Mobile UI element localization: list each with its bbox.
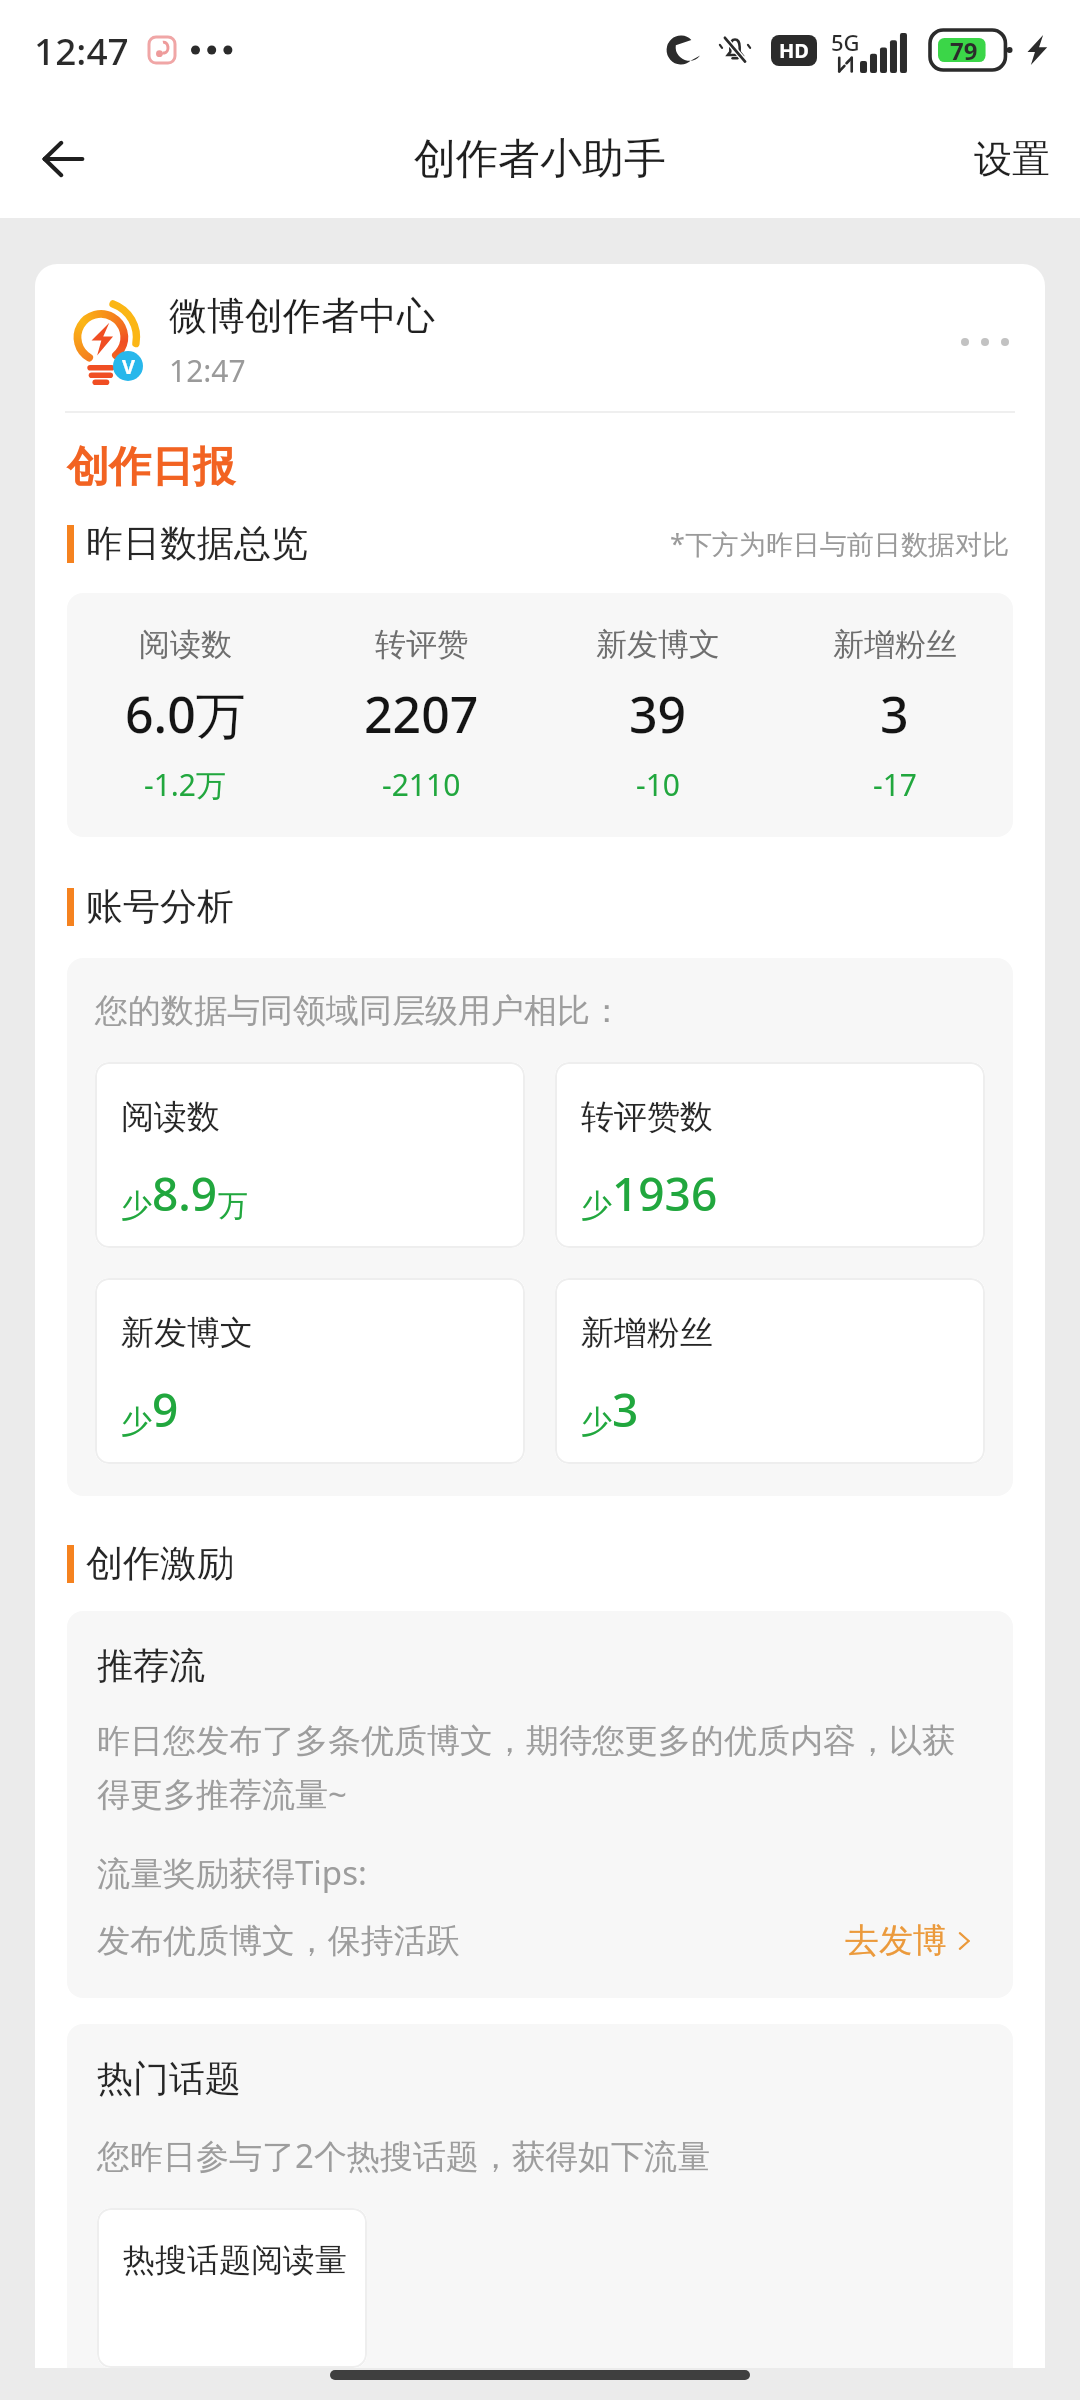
staticText: 6.0万 (125, 680, 246, 748)
staticText: 昨日您发布了多条优质博文，期待您更多的优质内容，以获得更多推荐流量~ (97, 1720, 983, 1816)
staticText: -17 (873, 764, 917, 805)
staticText: 微博创作者中心 (169, 292, 435, 340)
staticText: *下方为昨日与前日数据对比 (670, 525, 1009, 562)
staticText: 创作者小助手 (414, 133, 666, 186)
staticText: 推荐流 (97, 1643, 205, 1688)
staticText: 热搜话题阅读量 (123, 2240, 347, 2280)
staticText: 12:47 (34, 25, 129, 75)
staticText: 79 (950, 34, 978, 67)
button[interactable]: 设置 (944, 117, 1080, 201)
staticText: 12:47 (169, 350, 246, 391)
staticText: 少 (121, 1402, 152, 1441)
staticText: 发布优质博文，保持活跃 (97, 1920, 460, 1962)
staticText: 创作日报 (67, 441, 235, 494)
staticText: 8.9 (152, 1162, 218, 1225)
button[interactable]: More options (947, 317, 1023, 367)
staticText: HD (779, 37, 809, 64)
staticText: 去发博 (845, 1919, 947, 1962)
staticText: 创作激励 (86, 1540, 234, 1587)
staticText: 新发博文 (596, 625, 720, 664)
staticText: 新增粉丝 (833, 625, 957, 664)
staticText: 阅读数 (139, 625, 232, 664)
staticText: 少 (581, 1402, 612, 1441)
staticText: 5G (831, 27, 860, 57)
staticText: 转评赞数 (581, 1096, 713, 1138)
button[interactable]: 阅读数 (95, 1062, 525, 1248)
staticText: 昨日数据总览 (86, 520, 308, 567)
staticText: 您昨日参与了2个热搜话题，获得如下流量 (97, 2133, 710, 2178)
staticText: 设置 (974, 135, 1050, 183)
staticText: 3 (612, 1378, 639, 1441)
staticText: 1936 (612, 1162, 718, 1225)
staticText: 流量奖励获得Tips: (97, 1850, 367, 1895)
staticText: -2110 (382, 764, 461, 805)
staticText: 9 (152, 1378, 179, 1441)
staticText: 您的数据与同领域同层级用户相比： (95, 990, 623, 1032)
staticText: 阅读数 (121, 1096, 220, 1138)
button[interactable]: 新发博文 (95, 1278, 525, 1464)
staticText: V (122, 353, 135, 380)
staticText: 2207 (364, 680, 479, 748)
button[interactable]: 转评赞数 (555, 1062, 985, 1248)
button[interactable]: 热搜话题阅读量 (97, 2208, 367, 2368)
staticText: 新增粉丝 (581, 1312, 713, 1354)
staticText: 账号分析 (86, 883, 234, 930)
staticText: -10 (636, 764, 680, 805)
staticText: 3 (880, 680, 909, 748)
staticText: 万 (218, 1187, 248, 1225)
staticText: 新发博文 (121, 1312, 253, 1354)
button[interactable]: 新增粉丝 (555, 1278, 985, 1464)
staticText: -1.2万 (144, 764, 227, 805)
button[interactable]: 去发博 (839, 1913, 983, 1968)
staticText: 转评赞 (375, 625, 468, 664)
staticText: 热门话题 (97, 2056, 241, 2101)
staticText: 39 (629, 680, 687, 748)
staticText: 少 (581, 1186, 612, 1225)
staticText: 少 (121, 1186, 152, 1225)
button[interactable]: Back (20, 115, 108, 203)
